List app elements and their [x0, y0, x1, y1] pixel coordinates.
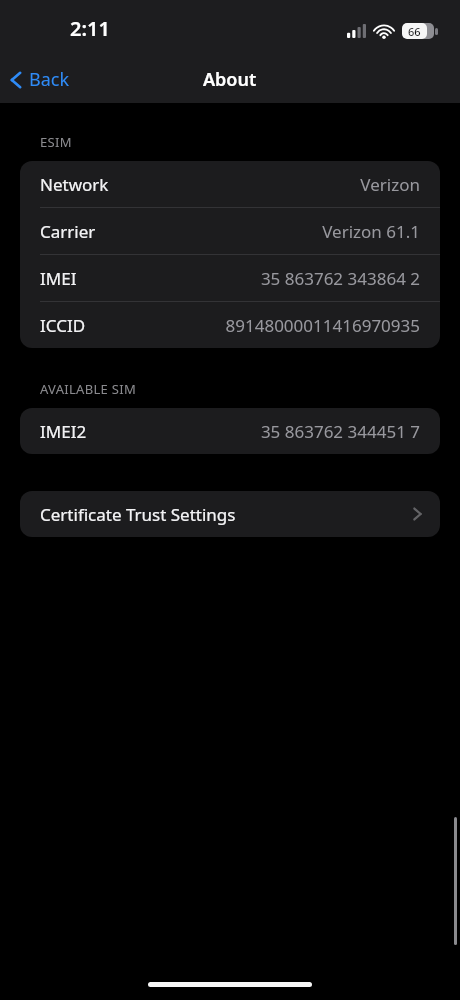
button[interactable]: IMEI2: [20, 408, 440, 454]
other: Back: [10, 70, 22, 90]
staticText: Network: [40, 173, 109, 196]
staticText: 2:11: [70, 15, 110, 42]
staticText: 89148000011416970935: [225, 314, 420, 337]
staticText: 35 863762 344451 7: [260, 420, 420, 443]
staticText: ESIM: [40, 133, 72, 151]
staticText: Carrier: [40, 220, 96, 243]
button[interactable]: IMEI: [20, 255, 440, 301]
staticText: AVAILABLE SIM: [40, 380, 137, 398]
staticText: Back: [29, 67, 70, 92]
staticText: About: [203, 67, 257, 92]
button[interactable]: Carrier: [20, 208, 440, 254]
staticText: 35 863762 343864 2: [260, 267, 420, 290]
button[interactable]: Network: [20, 161, 440, 207]
staticText: Certificate Trust Settings: [40, 503, 236, 526]
staticText: 66: [408, 24, 421, 39]
staticText: ICCID: [40, 314, 86, 337]
button[interactable]: Back: [0, 59, 82, 100]
button[interactable]: Certificate Trust Settings: [20, 491, 440, 537]
staticText: IMEI: [40, 267, 77, 290]
staticText: IMEI2: [40, 420, 87, 443]
staticText: Verizon 61.1: [322, 220, 420, 243]
other: Open Certificate Trust Settings: [413, 506, 422, 522]
staticText: Verizon: [360, 173, 420, 196]
button[interactable]: ICCID: [20, 302, 440, 348]
